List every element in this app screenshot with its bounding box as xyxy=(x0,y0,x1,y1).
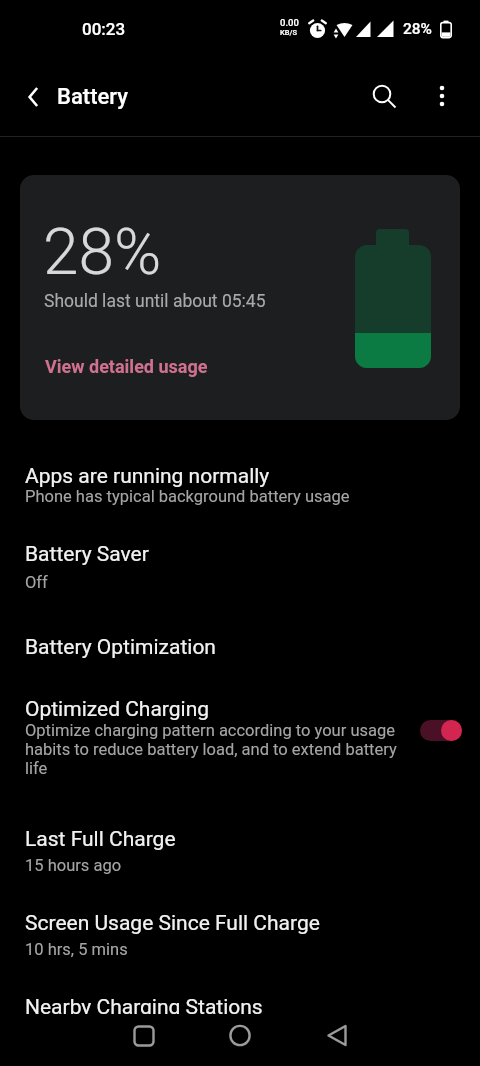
staticText: Battery xyxy=(57,84,128,110)
staticText: 28% xyxy=(43,215,162,290)
staticText: Apps are running normally xyxy=(25,464,270,489)
button[interactable]: View detailed usage xyxy=(34,343,234,387)
staticText: Should last until about 05:45 xyxy=(44,291,266,312)
staticText: Optimized Charging xyxy=(25,697,210,722)
button[interactable] xyxy=(418,72,466,120)
button[interactable] xyxy=(410,710,472,751)
staticText: Battery Optimization xyxy=(25,635,216,660)
button[interactable] xyxy=(313,1014,361,1062)
staticText: Off xyxy=(25,573,48,592)
button[interactable]: Battery Saver xyxy=(0,530,480,606)
staticText: View detailed usage xyxy=(45,356,208,377)
staticText: Optimize charging pattern according to y… xyxy=(25,721,397,778)
staticText: Screen Usage Since Full Charge xyxy=(25,911,320,936)
staticText: 28% xyxy=(403,20,433,38)
button[interactable]: Screen Usage Since Full Charge xyxy=(0,899,480,973)
button[interactable] xyxy=(12,73,60,121)
button[interactable]: Nearby Charging Stations xyxy=(0,983,480,1014)
staticText: Phone has typical background battery usa… xyxy=(25,487,350,506)
staticText: Last Full Charge xyxy=(25,827,176,852)
staticText: 0.00 xyxy=(280,17,299,28)
button[interactable]: 28% xyxy=(20,175,460,420)
button[interactable]: Last Full Charge xyxy=(0,815,480,889)
staticText: 15 hours ago xyxy=(25,856,122,875)
button[interactable]: Optimized Charging xyxy=(0,685,480,807)
button[interactable] xyxy=(359,72,407,120)
button[interactable]: Apps are running normally xyxy=(0,452,480,526)
staticText: KB/S xyxy=(280,28,297,37)
button[interactable] xyxy=(120,1014,168,1062)
button[interactable]: Battery Optimization xyxy=(0,622,480,674)
staticText: Battery Saver xyxy=(25,542,149,567)
staticText: Nearby Charging Stations xyxy=(25,995,263,1020)
staticText: 10 hrs, 5 mins xyxy=(25,940,128,959)
staticText: 00:23 xyxy=(82,19,126,39)
button[interactable] xyxy=(216,1014,264,1062)
